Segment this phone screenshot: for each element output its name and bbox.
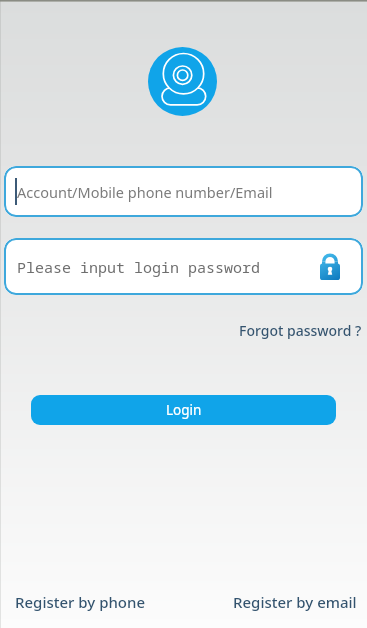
button[interactable]: Login (31, 395, 336, 425)
button[interactable]: Register by phone (15, 592, 146, 612)
staticText: Login (166, 401, 202, 419)
staticText: Please input login password (17, 257, 261, 277)
button[interactable]: Account/Mobile phone number/Email (4, 166, 363, 217)
button[interactable]: Please input login password (4, 238, 363, 295)
button[interactable]: Forgot password ? (239, 321, 362, 340)
button[interactable]: Register by email (233, 592, 357, 612)
staticText: Account/Mobile phone number/Email (17, 182, 273, 202)
